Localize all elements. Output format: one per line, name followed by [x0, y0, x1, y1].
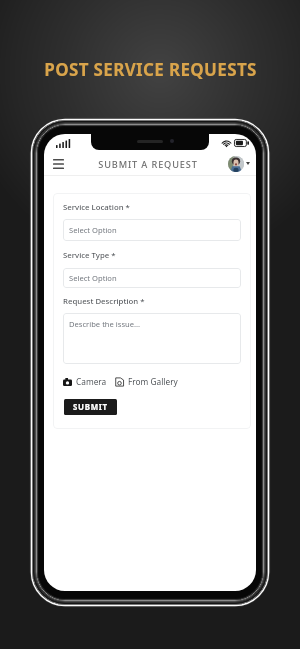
staticText: Select Option — [69, 225, 117, 235]
button[interactable]: Describe the issue... — [63, 313, 241, 364]
staticText: SUBMIT A REQUEST — [98, 158, 198, 171]
button[interactable]: Select Option — [63, 268, 241, 288]
button[interactable]: Camera — [63, 376, 107, 387]
staticText: POST SERVICE REQUESTS — [44, 58, 257, 81]
staticText: Service Location * — [63, 202, 130, 213]
staticText: Describe the issue... — [69, 319, 141, 329]
button[interactable]: From Gallery — [115, 376, 178, 387]
staticText: From Gallery — [128, 376, 178, 387]
button[interactable]: Select Option — [63, 219, 241, 241]
button[interactable]: SUBMIT — [64, 399, 117, 415]
button[interactable]: Menu — [47, 154, 69, 174]
button[interactable]: Account — [228, 154, 255, 173]
staticText: Select Option — [69, 273, 117, 283]
staticText: Service Type * — [63, 250, 116, 261]
staticText: Camera — [76, 376, 107, 387]
staticText: SUBMIT — [73, 402, 108, 413]
staticText: Request Description * — [63, 296, 145, 307]
